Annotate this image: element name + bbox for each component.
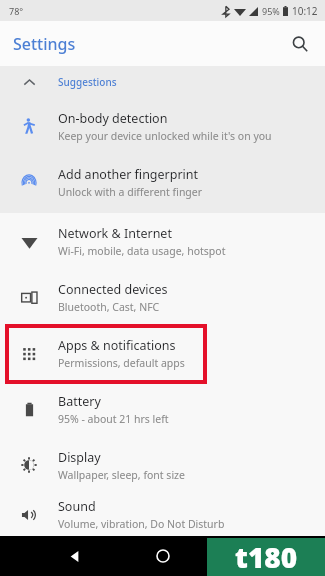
button[interactable]: Display [0,437,325,493]
button[interactable]: Home [147,536,179,576]
staticText: Connected devices [58,281,168,298]
staticText: Permissions, default apps [58,356,185,370]
button[interactable]: Battery [0,381,325,437]
button[interactable]: Back [58,536,90,576]
staticText: Battery [58,393,101,410]
button[interactable]: On-body detection [0,98,325,154]
staticText: Sound [58,498,96,515]
staticText: Network & Internet [58,225,172,242]
staticText: Keep your device unlocked while it's on … [58,129,272,143]
button[interactable]: Apps & notifications [0,325,325,381]
staticText: Display [58,449,101,466]
staticText: 10:12 [292,4,318,18]
staticText: Add another fingerprint [58,166,199,183]
button[interactable]: Search settings [285,29,315,59]
staticText: t180 [235,538,298,576]
button[interactable]: Suggestions [0,66,325,98]
staticText: Suggestions [58,75,117,89]
button[interactable]: Connected devices [0,269,325,325]
button[interactable]: Add another fingerprint [0,154,325,210]
staticText: 78° [9,5,24,17]
button[interactable]: Network & Internet [0,213,325,269]
staticText: 95% [262,5,280,17]
staticText: Settings [13,33,76,55]
staticText: Apps & notifications [58,337,176,354]
staticText: On-body detection [58,110,168,127]
staticText: Wi-Fi, mobile, data usage, hotspot [58,244,226,258]
staticText: Unlock with a different finger [58,185,203,199]
button[interactable]: Sound [0,493,325,536]
staticText: Wallpaper, sleep, font size [58,468,185,482]
staticText: 95% - about 21 hrs left [58,412,169,426]
staticText: Bluetooth, Cast, NFC [58,300,160,314]
staticText: Volume, vibration, Do Not Disturb [58,517,225,531]
